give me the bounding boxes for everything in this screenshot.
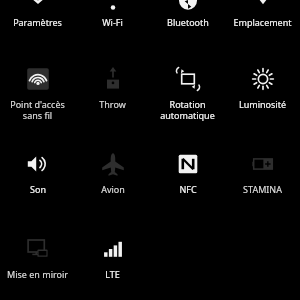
staticText: Avion bbox=[101, 183, 125, 195]
button[interactable]: Rotation automatique bbox=[150, 60, 225, 126]
staticText: Rotation automatique bbox=[160, 98, 215, 121]
button[interactable]: Avion bbox=[75, 145, 150, 211]
staticText: Bluetooth bbox=[167, 16, 209, 28]
button[interactable]: LTE bbox=[75, 230, 150, 296]
button[interactable]: Paramètres bbox=[0, 0, 75, 36]
button[interactable]: STAMINA bbox=[225, 145, 300, 211]
staticText: Mise en miroir bbox=[7, 268, 68, 280]
button[interactable]: Emplacement bbox=[225, 0, 300, 36]
staticText: Son bbox=[30, 183, 46, 195]
staticText: Paramètres bbox=[13, 16, 62, 28]
staticText: Point d'accès sans fil bbox=[10, 98, 65, 121]
button[interactable]: Son bbox=[0, 145, 75, 211]
staticText: Luminosité bbox=[239, 98, 286, 110]
staticText: Wi-Fi bbox=[102, 16, 123, 28]
button[interactable]: Luminosité bbox=[225, 60, 300, 126]
button[interactable]: NFC bbox=[150, 145, 225, 211]
staticText: Emplacement bbox=[233, 16, 292, 28]
button[interactable]: Point d'accès sans fil bbox=[0, 60, 75, 126]
staticText: STAMINA bbox=[243, 183, 282, 195]
button[interactable]: Throw bbox=[75, 60, 150, 126]
staticText: NFC bbox=[179, 183, 197, 195]
button[interactable]: Wi-Fi bbox=[75, 0, 150, 36]
button[interactable]: Bluetooth bbox=[150, 0, 225, 36]
button[interactable]: Mise en miroir bbox=[0, 230, 75, 296]
staticText: Throw bbox=[99, 98, 126, 110]
staticText: LTE bbox=[105, 268, 120, 280]
